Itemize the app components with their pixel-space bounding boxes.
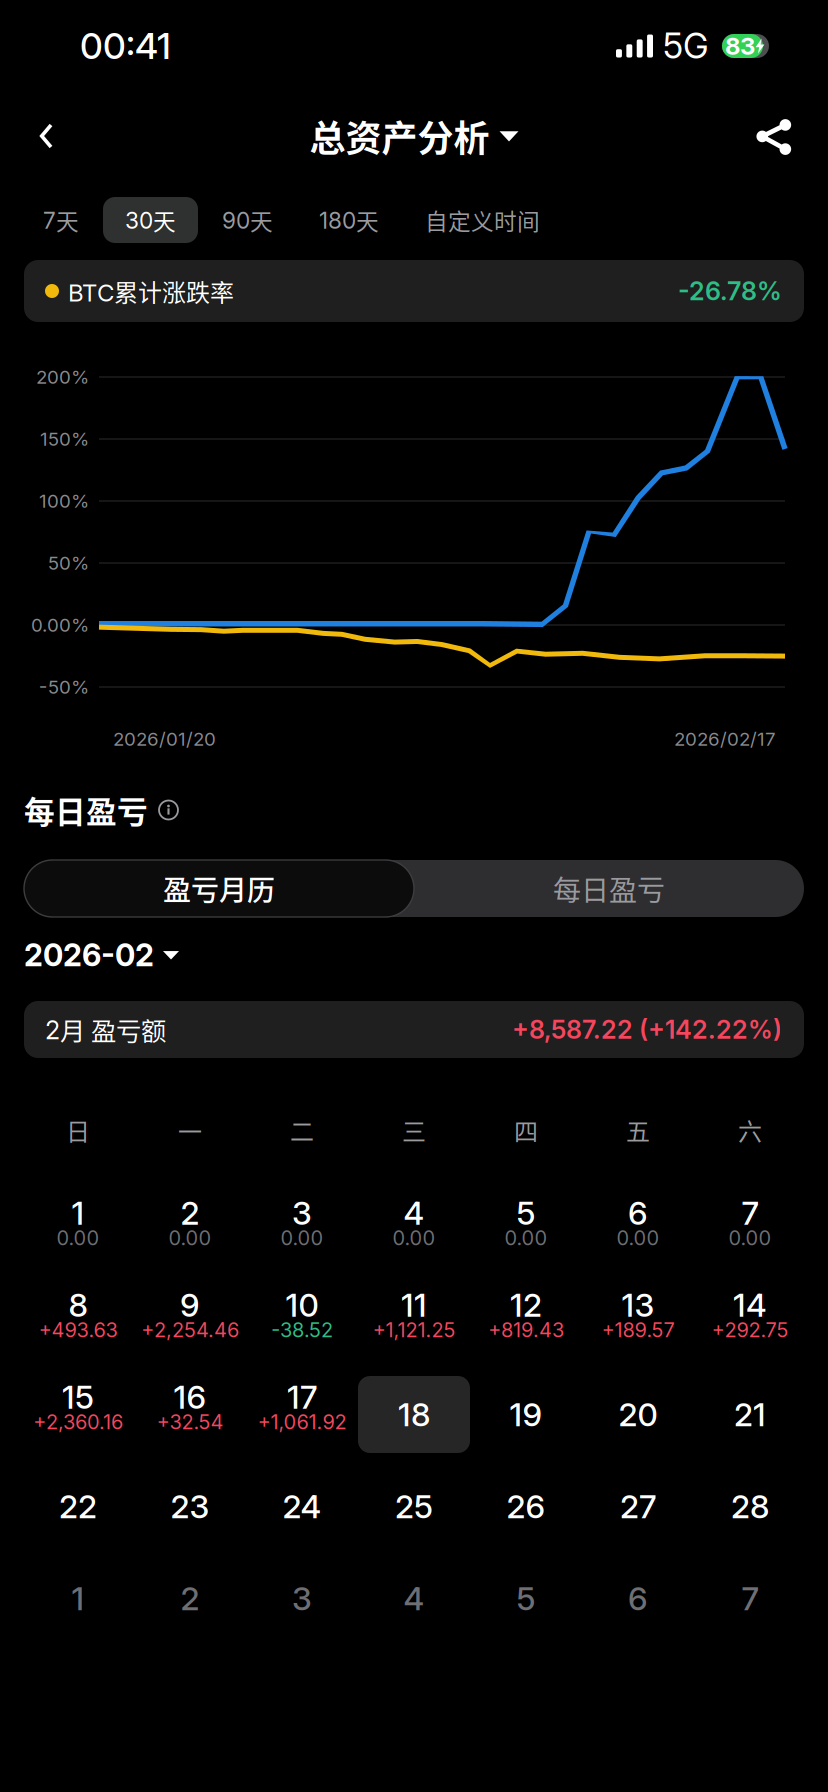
staticText: 总资产分析 xyxy=(309,110,489,162)
button[interactable]: 14 xyxy=(694,1281,806,1364)
button[interactable]: 11 xyxy=(358,1281,470,1364)
staticText: 28 xyxy=(731,1487,769,1526)
button[interactable]: 1 xyxy=(22,1189,134,1272)
button[interactable]: 180天 xyxy=(297,197,401,243)
staticText: -26.78% xyxy=(678,276,782,306)
staticText: 9 xyxy=(180,1286,200,1324)
staticText: +8,587.22 (+142.22%) xyxy=(512,1014,782,1045)
button[interactable]: 1 xyxy=(22,1557,134,1640)
staticText: 2 xyxy=(180,1579,199,1618)
staticText: +32.54 xyxy=(156,1410,223,1434)
button[interactable]: 9 xyxy=(134,1281,246,1364)
button[interactable]: 19 xyxy=(470,1373,582,1456)
staticText: 7 xyxy=(741,1194,758,1232)
staticText: 0.00 xyxy=(728,1226,771,1250)
button[interactable]: 7天 xyxy=(21,197,101,243)
button[interactable]: 12 xyxy=(470,1281,582,1364)
staticText: 90天 xyxy=(222,204,273,236)
staticText: 1 xyxy=(71,1579,84,1618)
button[interactable]: 4 xyxy=(358,1189,470,1272)
button[interactable]: 盈亏月历 xyxy=(24,860,414,917)
staticText: 26 xyxy=(506,1487,545,1526)
staticText: 自定义时间 xyxy=(425,204,540,236)
button[interactable]: 30天 xyxy=(103,197,198,243)
button[interactable]: 3 xyxy=(246,1189,358,1272)
button[interactable]: 自定义时间 xyxy=(403,197,562,243)
button[interactable]: Back xyxy=(0,101,88,170)
button[interactable]: 5 xyxy=(470,1557,582,1640)
staticText: +1,061.92 xyxy=(257,1410,346,1434)
staticText: 13 xyxy=(621,1286,654,1324)
button[interactable]: 90天 xyxy=(200,197,295,243)
staticText: 三 xyxy=(402,1113,426,1147)
staticText: BTC累计涨跌率 xyxy=(68,274,234,308)
button[interactable]: 10 xyxy=(246,1281,358,1364)
button[interactable]: 6 xyxy=(582,1557,694,1640)
staticText: 4 xyxy=(403,1194,424,1232)
staticText: 每日盈亏 xyxy=(24,788,148,832)
button[interactable]: 17 xyxy=(246,1373,358,1456)
button[interactable]: 21 xyxy=(694,1373,806,1456)
button[interactable]: 26 xyxy=(470,1465,582,1548)
staticText: 一 xyxy=(178,1113,202,1147)
staticText: 3 xyxy=(292,1194,312,1232)
staticText: 12 xyxy=(510,1286,542,1324)
staticText: -38.52 xyxy=(271,1318,333,1342)
staticText: 0.00 xyxy=(56,1226,99,1250)
staticText: +1,121.25 xyxy=(372,1318,455,1342)
staticText: 23 xyxy=(170,1487,209,1526)
button[interactable]: 25 xyxy=(358,1465,470,1548)
button[interactable]: 8 xyxy=(22,1281,134,1364)
button[interactable]: 2 xyxy=(134,1189,246,1272)
button[interactable]: 28 xyxy=(694,1465,806,1548)
staticText: +2,254.46 xyxy=(141,1318,239,1342)
button[interactable]: 16 xyxy=(134,1373,246,1456)
button[interactable]: Share xyxy=(727,99,828,172)
staticText: 27 xyxy=(620,1487,656,1526)
staticText: +493.63 xyxy=(38,1318,117,1342)
staticText: 30天 xyxy=(125,204,176,236)
button[interactable]: 24 xyxy=(246,1465,358,1548)
staticText: 2 xyxy=(180,1194,199,1232)
staticText: 180天 xyxy=(319,204,379,236)
staticText: 6 xyxy=(628,1194,648,1232)
staticText: 0.00 xyxy=(280,1226,323,1250)
button[interactable]: 每日盈亏 xyxy=(414,860,804,917)
staticText: +819.43 xyxy=(488,1318,564,1342)
staticText: 1 xyxy=(71,1194,84,1232)
button[interactable]: 7 xyxy=(694,1189,806,1272)
button[interactable]: 22 xyxy=(22,1465,134,1548)
button[interactable]: 27 xyxy=(582,1465,694,1548)
staticText: 二 xyxy=(290,1113,314,1147)
staticText: 21 xyxy=(734,1395,766,1434)
staticText: +189.57 xyxy=(601,1318,674,1342)
staticText: -50% xyxy=(39,676,89,698)
staticText: 3 xyxy=(292,1579,312,1618)
staticText: 7 xyxy=(741,1579,758,1618)
staticText: 8 xyxy=(68,1286,87,1324)
staticText: 盈亏月历 xyxy=(163,868,275,909)
staticText: 18 xyxy=(398,1395,430,1434)
staticText: 24 xyxy=(282,1487,321,1526)
button[interactable]: 15 xyxy=(22,1373,134,1456)
button[interactable]: 20 xyxy=(582,1373,694,1456)
button[interactable]: 18 xyxy=(358,1373,470,1456)
button[interactable]: 13 xyxy=(582,1281,694,1364)
staticText: 2026-02 xyxy=(24,936,154,973)
staticText: 日 xyxy=(66,1113,90,1147)
staticText: 6 xyxy=(628,1579,648,1618)
staticText: 17 xyxy=(287,1378,317,1416)
button[interactable]: 7 xyxy=(694,1557,806,1640)
button[interactable]: 2 xyxy=(134,1557,246,1640)
staticText: 每日盈亏 xyxy=(553,868,665,909)
staticText: 5G xyxy=(663,25,709,67)
button[interactable]: 4 xyxy=(358,1557,470,1640)
staticText: 19 xyxy=(509,1395,542,1434)
staticText: 150% xyxy=(40,428,89,450)
staticText: +2,360.16 xyxy=(33,1410,123,1434)
staticText: 200% xyxy=(36,366,89,388)
button[interactable]: 23 xyxy=(134,1465,246,1548)
button[interactable]: 3 xyxy=(246,1557,358,1640)
button[interactable]: 5 xyxy=(470,1189,582,1272)
button[interactable]: 6 xyxy=(582,1189,694,1272)
